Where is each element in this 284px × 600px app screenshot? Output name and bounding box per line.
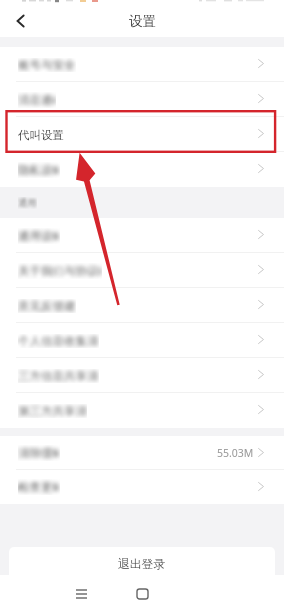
staticText: 第三方共享清 (18, 404, 87, 418)
staticText: 三方信息共享清 (18, 369, 99, 383)
staticText: 代叫设置 (18, 128, 64, 142)
button[interactable]: Recent apps (70, 583, 92, 600)
staticText: 消息通i (18, 92, 56, 108)
button[interactable]: 关于我们与协议i (0, 253, 284, 288)
button[interactable]: 通用设li (0, 218, 284, 253)
staticText: 设置 (129, 13, 156, 30)
staticText: 隐私设li (18, 162, 60, 178)
staticText: 通用设li (18, 228, 60, 244)
staticText: 55.03M (217, 446, 254, 460)
button[interactable]: Back (0, 5, 32, 37)
button[interactable]: 清除缓li (0, 436, 284, 470)
button[interactable]: 第三方共享清 (0, 393, 284, 428)
button[interactable]: 消息通i (0, 82, 284, 117)
staticText: 个人信息收集清 (18, 334, 99, 348)
staticText: 退出登录 (118, 557, 166, 572)
button[interactable]: 三方信息共享清 (0, 358, 284, 393)
button[interactable]: 检查更li (0, 470, 284, 504)
button[interactable]: 退出登录 (9, 547, 275, 575)
staticText: 关于我们与协议i (18, 263, 102, 279)
staticText: 意见反馈建 (18, 299, 76, 313)
button[interactable]: 意见反馈建 (0, 288, 284, 323)
button[interactable]: 代叫设置 (0, 117, 284, 152)
button[interactable]: 隐私设li (0, 152, 284, 187)
staticText: 清除缓li (18, 445, 60, 461)
staticText: 通用 (18, 197, 37, 209)
staticText: 检查更li (18, 479, 60, 495)
button[interactable]: Home (131, 583, 153, 600)
button[interactable]: 账号与安全 (0, 47, 284, 82)
staticText: 账号与安全 (18, 58, 76, 72)
button[interactable]: 个人信息收集清 (0, 323, 284, 358)
